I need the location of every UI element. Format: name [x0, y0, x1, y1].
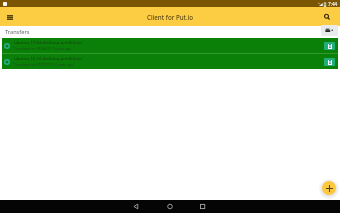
- staticText: Transfers: [5, 28, 30, 36]
- button[interactable]: Download file: [324, 58, 335, 66]
- button[interactable]: Add transfer: [322, 181, 336, 195]
- button[interactable]: Sort transfers: [321, 25, 338, 36]
- staticText: ubuntu-16.10-desktop-amd64.iso: [14, 55, 82, 61]
- staticText: Client for Put.io: [147, 13, 194, 21]
- staticText: Completed on 18/04/2017 a year ago: [14, 46, 72, 50]
- staticText: 7:44: [328, 1, 338, 7]
- staticText: ubuntu-17.04-desktop-amd64.iso: [14, 39, 82, 45]
- button[interactable]: ubuntu-16.10-desktop-amd64.iso: [2, 54, 338, 69]
- button[interactable]: ubuntu-17.04-desktop-amd64.iso: [2, 38, 338, 53]
- staticText: Completed on 07/07/2016 2 years ago: [14, 62, 73, 66]
- button[interactable]: Download file: [324, 42, 335, 50]
- button[interactable]: Open navigation menu: [4, 11, 16, 23]
- button[interactable]: Search: [321, 11, 333, 23]
